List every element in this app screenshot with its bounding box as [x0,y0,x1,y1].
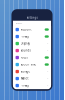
staticText: Wallet [21,77,29,80]
button[interactable]: Storage [13,68,51,75]
staticText: Privacy [21,35,29,38]
staticText: Screen Time [21,63,37,66]
button[interactable]: Screen Time [13,61,51,68]
staticText: > [47,70,49,73]
button[interactable]: Privacy [13,33,51,40]
button[interactable]: Wallet [13,75,51,82]
button[interactable]: Display [13,40,51,47]
staticText: Display [21,42,30,45]
staticText: > [47,77,49,80]
staticText: > [47,84,49,87]
staticText: Account [21,28,32,31]
button[interactable]: Focus [13,54,51,61]
button[interactable]: Account [13,26,51,33]
staticText: Sounds [21,49,31,52]
staticText: GENERAL [16,22,23,24]
staticText: Storage [21,70,31,73]
staticText: Settings [26,16,37,19]
staticText: Focus [21,56,28,59]
staticText: > [47,42,49,45]
staticText: > [47,49,49,52]
button[interactable]: Sounds [13,47,51,54]
staticText: Privacy [21,84,29,87]
button[interactable]: Privacy [13,82,51,89]
